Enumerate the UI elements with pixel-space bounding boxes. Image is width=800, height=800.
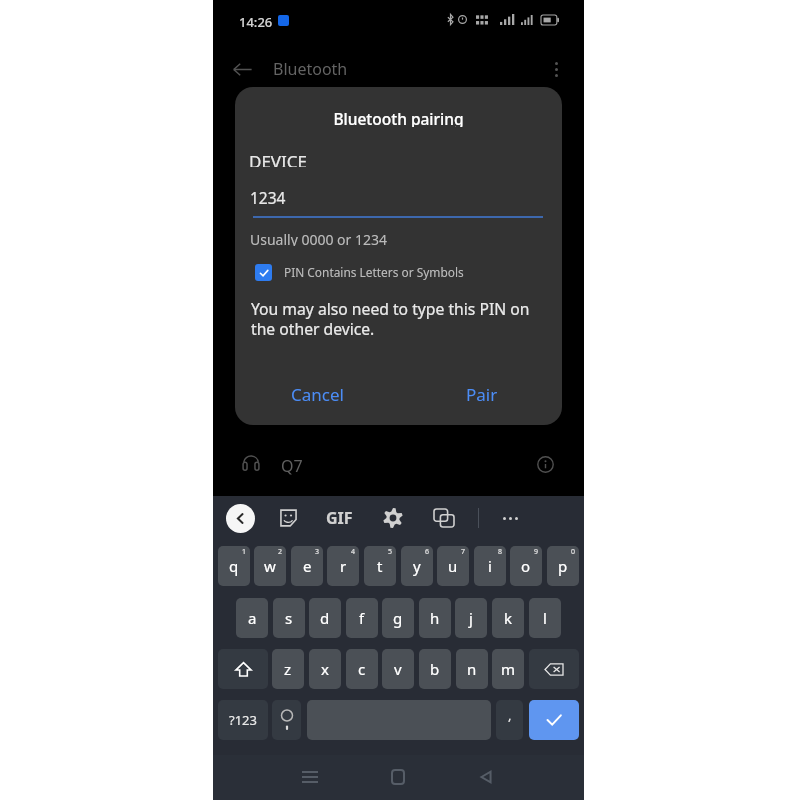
staticText: PIN Contains Letters or Symbols xyxy=(284,264,464,280)
staticText: f xyxy=(359,608,365,628)
staticText: Q7 xyxy=(281,455,303,477)
button[interactable]: x xyxy=(309,649,341,689)
button[interactable]: t xyxy=(364,546,396,586)
button[interactable]: v xyxy=(382,649,414,689)
button[interactable]: f xyxy=(346,598,378,638)
staticText: k xyxy=(504,608,513,628)
staticText: w xyxy=(264,556,276,576)
staticText: a xyxy=(248,608,257,628)
button[interactable]: Translate xyxy=(434,509,454,527)
button[interactable]: e xyxy=(291,546,323,586)
button[interactable]: k xyxy=(492,598,524,638)
button[interactable]: n xyxy=(456,649,488,689)
button[interactable]: r xyxy=(327,546,359,586)
staticText: Pair xyxy=(466,383,498,406)
button[interactable]: Emoji xyxy=(272,700,301,740)
staticText: 6 xyxy=(425,547,430,557)
staticText: 3 xyxy=(315,547,320,557)
staticText: b xyxy=(430,659,440,679)
button[interactable]: Q7 xyxy=(213,440,584,484)
button[interactable]: q xyxy=(218,546,250,586)
staticText: z xyxy=(284,659,292,679)
staticText: Usually 0000 or 1234 xyxy=(250,230,388,246)
staticText: g xyxy=(393,608,403,628)
staticText: y xyxy=(413,556,421,576)
staticText: l xyxy=(543,608,547,628)
staticText: x xyxy=(321,659,329,679)
staticText: p xyxy=(558,556,568,576)
staticText: i xyxy=(488,556,492,576)
staticText: e xyxy=(303,556,312,576)
button[interactable]: Back xyxy=(466,757,506,797)
button[interactable]: Settings xyxy=(383,508,403,528)
staticText: 4 xyxy=(351,547,356,557)
button[interactable]: More xyxy=(498,506,523,531)
staticText: GIF xyxy=(326,507,353,529)
button[interactable]: w xyxy=(254,546,286,586)
staticText: Bluetooth pairing xyxy=(333,108,464,127)
staticText: DEVICE xyxy=(249,150,308,167)
button[interactable]: u xyxy=(437,546,469,586)
staticText: j xyxy=(469,608,473,628)
button[interactable]: l xyxy=(529,598,561,638)
staticText: r xyxy=(340,556,347,576)
staticText: 7 xyxy=(461,547,466,557)
staticText: c xyxy=(358,659,366,679)
staticText: t xyxy=(377,556,383,576)
staticText: v xyxy=(394,659,402,679)
staticText: , xyxy=(508,706,512,724)
button[interactable]: Stickers xyxy=(278,509,299,527)
staticText: q xyxy=(229,556,239,576)
staticText: d xyxy=(320,608,330,628)
staticText: 8 xyxy=(498,547,503,557)
button[interactable]: b xyxy=(419,649,451,689)
button[interactable]: p xyxy=(547,546,579,586)
button[interactable]: d xyxy=(309,598,341,638)
button[interactable]: g xyxy=(382,598,414,638)
button[interactable]: Device details xyxy=(534,453,557,476)
button[interactable]: Cancel xyxy=(280,376,354,412)
button[interactable]: Home xyxy=(378,757,418,797)
button[interactable]: Recents xyxy=(290,757,330,797)
staticText: 9 xyxy=(534,547,539,557)
button[interactable]: More options xyxy=(543,56,569,82)
button[interactable]: Collapse toolbar xyxy=(226,504,255,533)
staticText: m xyxy=(501,659,516,679)
staticText: s xyxy=(285,608,293,628)
staticText: 5 xyxy=(388,547,393,557)
button[interactable]: y xyxy=(401,546,433,586)
staticText: You may also need to type this PIN on th… xyxy=(251,298,535,340)
staticText: n xyxy=(467,659,477,679)
staticText: ?123 xyxy=(229,711,257,729)
staticText: Cancel xyxy=(291,383,344,406)
button[interactable]: Shift xyxy=(218,649,268,689)
button[interactable]: Back xyxy=(228,55,256,83)
button[interactable]: ?123 xyxy=(218,700,268,740)
button[interactable]: m xyxy=(492,649,524,689)
staticText: 2 xyxy=(278,547,283,557)
button[interactable]: Enter xyxy=(529,700,579,740)
button[interactable]: i xyxy=(474,546,506,586)
staticText: 14:26 xyxy=(239,13,273,31)
staticText: 1234 xyxy=(250,187,286,205)
button[interactable]: , xyxy=(496,700,523,740)
button[interactable]: s xyxy=(273,598,305,638)
button[interactable]: o xyxy=(510,546,542,586)
staticText: 0 xyxy=(571,547,576,557)
staticText: 1 xyxy=(242,547,247,557)
button[interactable]: j xyxy=(455,598,487,638)
staticText: Bluetooth xyxy=(273,58,348,80)
button[interactable]: z xyxy=(272,649,304,689)
button[interactable]: a xyxy=(236,598,268,638)
staticText: u xyxy=(448,556,458,576)
button[interactable]: Pair xyxy=(455,376,509,412)
button[interactable]: PIN Contains Letters or Symbols xyxy=(255,262,464,282)
button[interactable]: c xyxy=(346,649,378,689)
button[interactable]: Backspace xyxy=(529,649,579,689)
button[interactable]: h xyxy=(419,598,451,638)
staticText: h xyxy=(430,608,440,628)
staticText: o xyxy=(521,556,531,576)
